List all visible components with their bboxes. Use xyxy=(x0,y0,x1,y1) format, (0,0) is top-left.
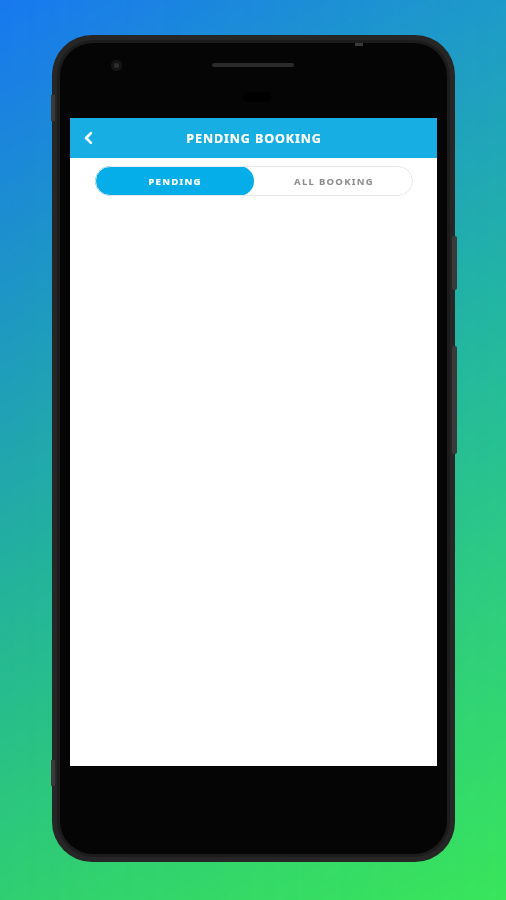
staticText: ALL BOOKING xyxy=(294,175,374,188)
staticText: PENDING xyxy=(148,175,202,188)
staticText: PENDING BOOKING xyxy=(186,130,322,147)
button[interactable]: PENDING xyxy=(95,166,254,196)
button[interactable]: Back xyxy=(70,118,108,158)
button[interactable]: ALL BOOKING xyxy=(254,166,413,196)
